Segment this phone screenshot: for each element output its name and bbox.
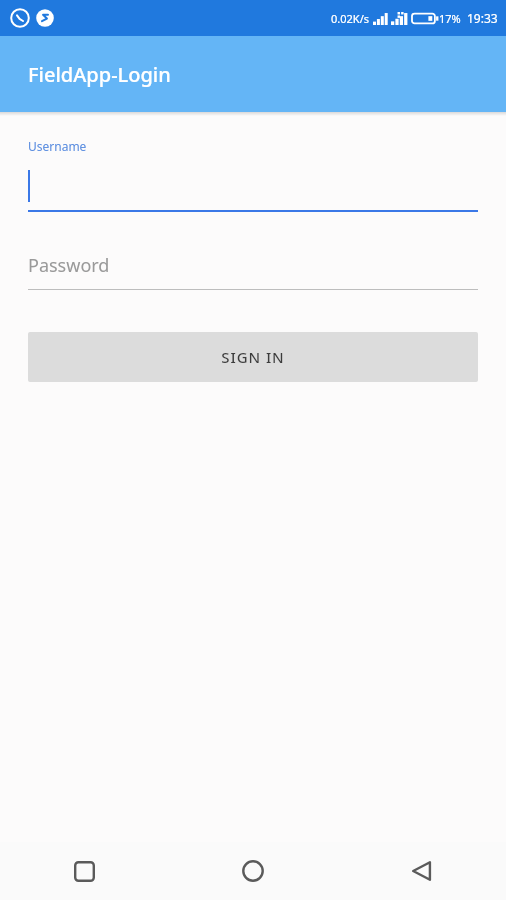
button[interactable]: Username bbox=[28, 138, 478, 212]
staticText: FieldApp-Login bbox=[28, 61, 171, 88]
staticText: SIGN IN bbox=[221, 347, 285, 367]
button[interactable]: Recent apps bbox=[0, 842, 168, 900]
staticText: Username bbox=[28, 138, 87, 154]
staticText: 0.02K/s bbox=[331, 11, 369, 26]
button[interactable]: Home bbox=[168, 842, 337, 900]
staticText: Password bbox=[28, 253, 110, 278]
button[interactable]: SIGN IN bbox=[28, 332, 478, 382]
staticText: 19:33 bbox=[467, 10, 498, 26]
button[interactable]: Back bbox=[337, 842, 506, 900]
staticText: 17% bbox=[439, 11, 461, 26]
button[interactable]: Password bbox=[28, 246, 478, 290]
